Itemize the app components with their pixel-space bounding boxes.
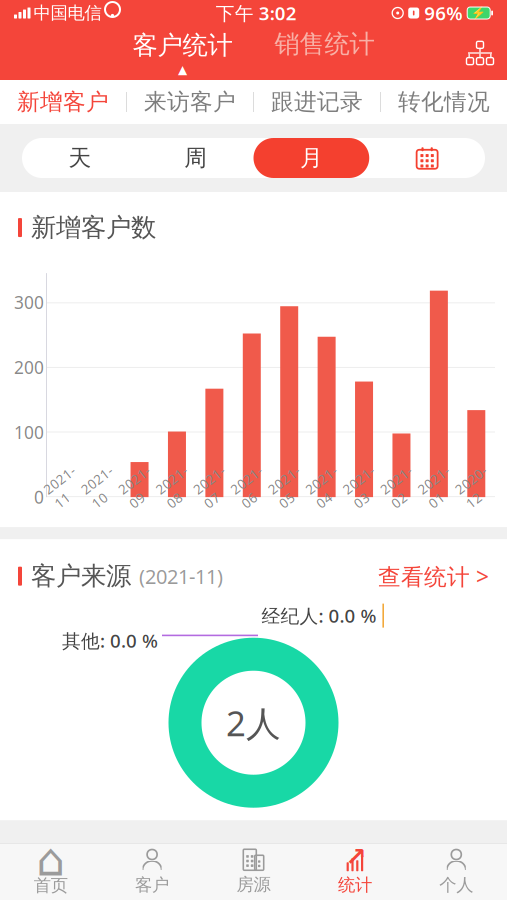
staticText: 来访客户 bbox=[144, 88, 236, 116]
staticText: 下午 3:02 bbox=[216, 1, 297, 25]
button[interactable]: 跟进记录 bbox=[254, 80, 380, 124]
staticText: 个人 bbox=[439, 874, 473, 896]
button[interactable]: 周 bbox=[138, 138, 254, 178]
staticText: 2021-09 bbox=[121, 469, 157, 505]
staticText: 100 bbox=[14, 421, 44, 444]
button[interactable]: ↗ bbox=[304, 844, 406, 900]
staticText: 统计 bbox=[338, 874, 372, 896]
staticText: 周 bbox=[184, 144, 207, 172]
staticText: 中国电信 bbox=[33, 2, 101, 24]
staticText: (2021-11) bbox=[139, 563, 223, 589]
button[interactable]: 销售统计 bbox=[270, 28, 378, 78]
staticText: 其他: 0.0 % bbox=[62, 628, 158, 653]
staticText: 200 bbox=[14, 356, 44, 379]
staticText: 96% bbox=[424, 1, 462, 25]
staticText: 2人 bbox=[226, 700, 281, 746]
staticText: 0 bbox=[34, 486, 44, 509]
staticText: 跟进记录 bbox=[271, 88, 363, 116]
staticText: 2021-07 bbox=[196, 469, 232, 505]
button[interactable]: 转化情况 bbox=[381, 80, 507, 124]
button[interactable]: 选择日期 bbox=[369, 138, 485, 178]
staticText: 2020-12 bbox=[458, 469, 494, 505]
staticText: 2021-08 bbox=[159, 469, 195, 505]
staticText: 2021-10 bbox=[84, 469, 120, 505]
staticText: 2021-01 bbox=[421, 469, 457, 505]
staticText: ⌂ bbox=[36, 834, 65, 885]
button[interactable]: 天 bbox=[22, 138, 138, 178]
staticText: 2021-02 bbox=[383, 469, 419, 505]
staticText: 新增客户数 bbox=[31, 212, 156, 243]
staticText: 查看统计 > bbox=[378, 561, 489, 591]
staticText: 销售统计 bbox=[274, 28, 374, 60]
button[interactable]: 新增客户 bbox=[0, 80, 126, 124]
staticText: ▲ bbox=[178, 63, 187, 76]
staticText: 2021-03 bbox=[346, 469, 382, 505]
staticText: ↗ bbox=[345, 842, 366, 871]
staticText: 月 bbox=[300, 144, 323, 172]
staticText: 转化情况 bbox=[398, 88, 490, 116]
staticText: 2021-06 bbox=[234, 469, 270, 505]
button[interactable]: ⌂ bbox=[0, 844, 101, 900]
button[interactable]: 月 bbox=[253, 138, 369, 178]
button[interactable]: 客户 bbox=[101, 844, 203, 900]
staticText: 新增客户 bbox=[17, 88, 109, 116]
staticText: 2021-05 bbox=[271, 469, 307, 505]
staticText: 客户统计 bbox=[132, 30, 232, 61]
staticText: 经纪人: 0.0 % bbox=[261, 603, 376, 628]
staticText: 2021-11 bbox=[47, 469, 83, 505]
staticText: 2021-04 bbox=[309, 469, 345, 505]
button[interactable]: 客户统计 bbox=[128, 30, 236, 76]
staticText: 客户来源 bbox=[31, 561, 131, 592]
staticText: 天 bbox=[68, 144, 91, 172]
button[interactable]: 查看统计 > bbox=[378, 557, 489, 595]
button[interactable]: 组织架构 bbox=[453, 32, 507, 74]
staticText: 房源 bbox=[236, 874, 270, 895]
staticText: ⚡ bbox=[471, 6, 486, 20]
button[interactable]: 个人 bbox=[406, 844, 507, 900]
staticText: 客户 bbox=[135, 874, 169, 896]
button[interactable]: 房源 bbox=[203, 844, 304, 900]
staticText: 首页 bbox=[34, 875, 68, 896]
staticText: 300 bbox=[14, 291, 44, 314]
button[interactable]: 来访客户 bbox=[127, 80, 253, 124]
